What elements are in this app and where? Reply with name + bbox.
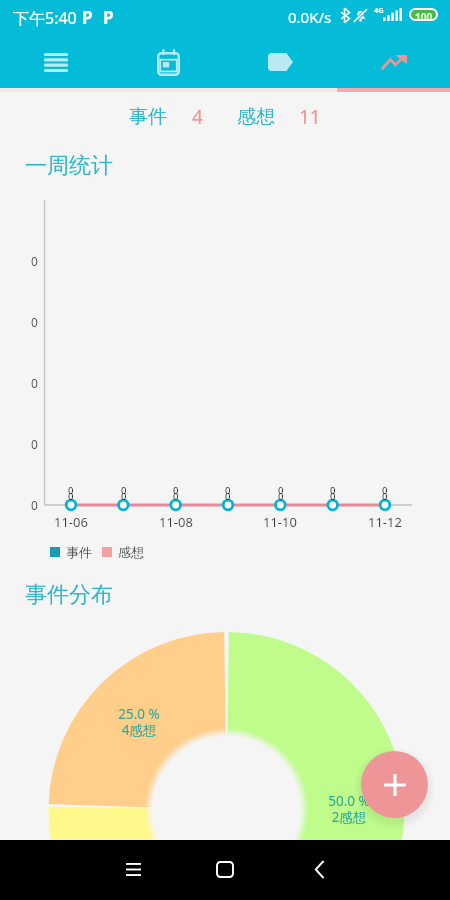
staticText: 4 xyxy=(192,104,203,130)
staticText: 0 xyxy=(278,484,284,497)
staticText: 11 xyxy=(299,104,321,130)
staticText: 0 xyxy=(173,490,179,503)
staticText: 事件分布 xyxy=(25,581,113,609)
staticText: 0 xyxy=(31,314,38,330)
staticText: 0 xyxy=(330,484,336,497)
button[interactable]: Statistics xyxy=(337,36,450,88)
staticText: 0 xyxy=(31,253,38,269)
button[interactable]: Home xyxy=(203,847,247,891)
staticText: 11-08 xyxy=(159,513,193,531)
staticText: 0 xyxy=(121,490,127,503)
staticText: 25.0 % 4感想 xyxy=(118,705,160,739)
staticText: 0.0K/s xyxy=(288,7,332,27)
staticText: 0 xyxy=(225,490,231,503)
staticText: 事件 xyxy=(66,544,92,560)
staticText: 0 xyxy=(121,484,127,497)
button[interactable]: Add xyxy=(361,751,428,818)
button[interactable]: Calendar xyxy=(112,36,224,88)
staticText: 11-12 xyxy=(368,513,402,531)
button[interactable]: Menu xyxy=(0,36,112,88)
button[interactable]: Recents xyxy=(111,847,155,891)
staticText: 0 xyxy=(382,490,388,503)
staticText: 0 xyxy=(173,484,179,497)
staticText: 0 xyxy=(278,490,284,503)
staticText: 11-10 xyxy=(263,513,297,531)
staticText: 事件 xyxy=(129,105,167,129)
staticText: 0 xyxy=(382,484,388,497)
staticText: P xyxy=(103,6,114,29)
staticText: 0 xyxy=(330,490,336,503)
staticText: 100 xyxy=(415,10,433,19)
staticText: 0 xyxy=(68,484,74,497)
staticText: 0 xyxy=(31,375,38,391)
button[interactable]: Tags xyxy=(224,36,337,88)
staticText: 50.0 % 2感想 xyxy=(328,792,370,826)
staticText: 一周统计 xyxy=(25,152,113,180)
staticText: 0 xyxy=(225,484,231,497)
staticText: P xyxy=(82,6,93,29)
staticText: 感想 xyxy=(237,105,275,129)
staticText: 4G xyxy=(374,5,384,15)
staticText: 11-06 xyxy=(54,513,88,531)
staticText: 0 xyxy=(31,436,38,452)
staticText: 0 xyxy=(68,490,74,503)
button[interactable]: Back xyxy=(297,847,341,891)
staticText: 0 xyxy=(31,497,38,513)
staticText: 下午5:40 xyxy=(13,7,77,29)
staticText: 感想 xyxy=(118,544,144,560)
